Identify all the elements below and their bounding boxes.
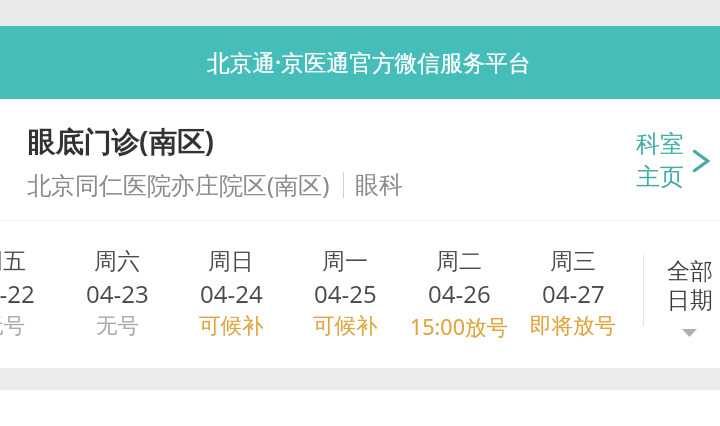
staticText: 04-22 [0,277,35,310]
staticText: 周日 [208,247,254,276]
button[interactable]: 周六 [60,221,174,368]
staticText: 无号 [96,312,139,339]
other: Expand date list [682,329,697,337]
staticText: 04-24 [200,277,263,310]
button[interactable]: 周二 [402,221,516,368]
staticText: 眼科 [355,170,403,200]
staticText: 北京通·京医通官方微信服务平台 [207,47,531,78]
staticText: 主页 [636,162,684,192]
button[interactable]: 全部 [644,221,720,368]
staticText: 眼底门诊(南区) [27,122,214,160]
staticText: 日期 [667,286,713,315]
button[interactable]: 科室 [636,129,709,192]
staticText: 周六 [94,247,140,276]
staticText: 可候补 [199,312,264,339]
staticText: 周一 [322,247,368,276]
staticText: 无号 [0,312,25,339]
staticText: 即将放号 [530,312,616,339]
staticText: 科室 [636,129,684,159]
staticText: 周二 [436,247,482,276]
button[interactable]: 周一 [288,221,402,368]
staticText: 北京同仁医院亦庄院区(南区) [27,168,330,201]
staticText: 04-23 [86,277,149,310]
button[interactable]: 周五 [0,221,60,368]
staticText: 周五 [0,247,26,276]
staticText: 04-27 [542,277,605,310]
staticText: 15:00放号 [410,312,508,341]
button[interactable]: 周三 [516,221,630,368]
staticText: 周三 [550,247,596,276]
staticText: 04-25 [314,277,377,310]
staticText: 全部 [667,257,713,286]
staticText: 可候补 [313,312,378,339]
button[interactable]: 周日 [174,221,288,368]
staticText: 04-26 [428,277,491,310]
